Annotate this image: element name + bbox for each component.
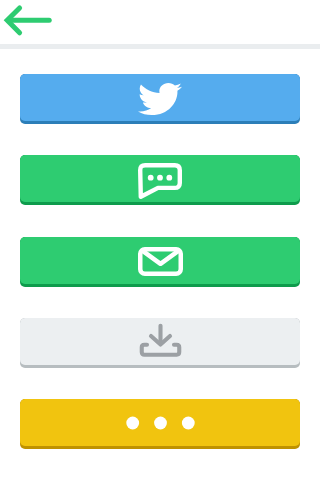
- button[interactable]: Download: [20, 318, 300, 368]
- button[interactable]: Share on Twitter: [20, 74, 300, 124]
- button[interactable]: Back: [0, 0, 56, 44]
- button[interactable]: Send email: [20, 237, 300, 287]
- button[interactable]: Send SMS: [20, 155, 300, 205]
- button[interactable]: More: [20, 399, 300, 449]
